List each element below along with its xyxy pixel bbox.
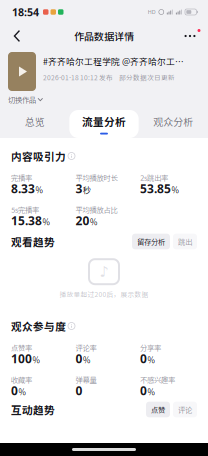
staticText: % xyxy=(147,386,154,397)
staticText: 留存分析 xyxy=(137,236,165,247)
staticText: 评论 xyxy=(178,404,192,415)
button[interactable]: 返回 xyxy=(4,24,30,48)
staticText: 观众分析 xyxy=(153,114,193,129)
button[interactable]: 跳出 xyxy=(173,234,197,249)
staticText: 内容吸引力 xyxy=(11,148,66,164)
staticText: 总览 xyxy=(25,114,45,129)
staticText: HD xyxy=(148,8,156,16)
button[interactable]: 更多 xyxy=(177,24,203,48)
button[interactable]: 总览 xyxy=(0,110,69,138)
button[interactable]: 切换作品 xyxy=(8,94,43,105)
staticText: 切换作品 xyxy=(8,94,36,105)
button[interactable]: 评论 xyxy=(173,402,197,417)
button[interactable]: 点赞 xyxy=(146,402,170,417)
staticText: 评论率 xyxy=(75,342,96,353)
staticText: 53.85 xyxy=(140,180,171,196)
staticText: 收藏率 xyxy=(11,374,32,385)
staticText: 8.33 xyxy=(11,180,35,196)
staticText: 5s完播率 xyxy=(11,204,39,215)
staticText: 100 xyxy=(11,350,32,366)
staticText: % xyxy=(32,354,39,365)
staticText: 18:54 xyxy=(12,5,39,19)
staticText: 0 xyxy=(75,382,82,398)
staticText: % xyxy=(147,354,154,365)
staticText: 0 xyxy=(75,350,82,366)
staticText: 0 xyxy=(11,382,18,398)
staticText: % xyxy=(90,216,97,227)
staticText: 互动趋势 xyxy=(11,402,55,417)
staticText: 平均播放时长 xyxy=(75,172,117,183)
staticText: 观众参与度 xyxy=(11,318,66,334)
staticText: 秒 xyxy=(83,184,91,195)
staticText: % xyxy=(42,216,49,227)
staticText: % xyxy=(83,354,90,365)
staticText: 分享率 xyxy=(140,342,161,353)
staticText: 跳出 xyxy=(178,236,192,247)
staticText: 0 xyxy=(140,350,147,366)
staticText: 完播率 xyxy=(11,172,32,183)
staticText: 点赞 xyxy=(151,404,165,415)
staticText: 15.38 xyxy=(11,212,42,228)
staticText: 作品数据详情 xyxy=(74,29,134,43)
button[interactable]: 流量分析 xyxy=(69,110,139,138)
staticText: 不感兴趣率 xyxy=(140,374,175,385)
staticText: % xyxy=(35,184,42,195)
staticText: 播放量超过200后，展示数据 xyxy=(59,289,148,299)
staticText: % xyxy=(18,386,25,397)
staticText: % xyxy=(171,184,178,195)
staticText: 20 xyxy=(75,212,89,228)
staticText: #齐齐哈尔工程学院 @齐齐哈尔工程学院品... xyxy=(43,55,191,67)
button[interactable]: 观众分析 xyxy=(139,110,208,138)
button[interactable]: 留存分析 xyxy=(132,234,170,249)
staticText: 流量分析 xyxy=(82,114,126,129)
staticText: 0 xyxy=(140,382,147,398)
staticText: 点赞率 xyxy=(11,342,32,353)
staticText: 2026-01-18 10:12 发布 xyxy=(43,72,113,82)
staticText: 部分数据次日更新 xyxy=(119,72,175,82)
staticText: 平均播放占比 xyxy=(75,204,117,215)
staticText: 2s跳出率 xyxy=(140,172,168,183)
staticText: 3 xyxy=(75,180,82,196)
staticText: 观看趋势 xyxy=(11,234,55,249)
staticText: ♪ xyxy=(99,263,108,280)
staticText: 弹幕量 xyxy=(75,374,96,385)
